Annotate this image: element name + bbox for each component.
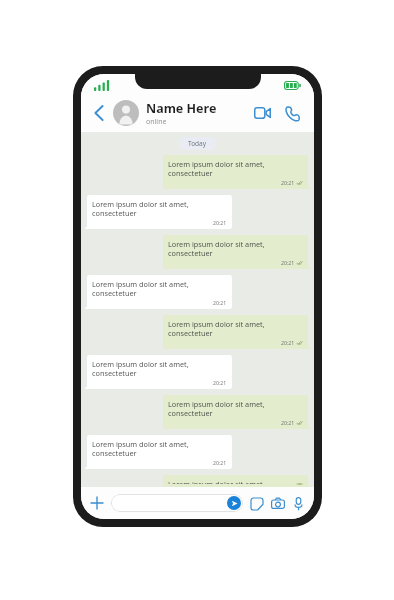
staticText: Lorem ipsum dolor sit amet, consectetuer bbox=[168, 319, 303, 338]
button[interactable]: Video call bbox=[251, 102, 273, 124]
staticText: 20:21 bbox=[281, 179, 295, 186]
staticText: online bbox=[146, 117, 167, 127]
staticText: Lorem ipsum dolor sit amet, consectetuer bbox=[92, 279, 227, 298]
staticText: Today bbox=[188, 139, 207, 148]
button[interactable]: Stickers bbox=[248, 495, 265, 512]
staticText: Lorem ipsum dolor sit amet, consectetuer bbox=[168, 399, 303, 418]
staticText: 20:21 bbox=[213, 379, 227, 386]
button[interactable]: Send bbox=[111, 494, 243, 512]
button[interactable]: Today bbox=[188, 139, 207, 148]
button[interactable]: Lorem ipsum dolor sit amet, consectetuer bbox=[87, 195, 232, 229]
button[interactable]: Lorem ipsum dolor sit amet, consectetuer bbox=[163, 315, 308, 349]
button[interactable]: Lorem ipsum dolor sit amet, consectetuer bbox=[163, 475, 308, 487]
staticText: Lorem ipsum dolor sit amet, consectetuer bbox=[92, 199, 227, 218]
button[interactable]: Lorem ipsum dolor sit amet, consectetuer bbox=[87, 355, 232, 389]
staticText: 20:21 bbox=[213, 219, 227, 226]
staticText: Lorem ipsum dolor sit amet, consectetuer bbox=[92, 439, 227, 458]
staticText: Lorem ipsum dolor sit amet, consectetuer bbox=[168, 479, 303, 484]
button[interactable]: Lorem ipsum dolor sit amet, consectetuer bbox=[87, 275, 232, 309]
button[interactable]: Lorem ipsum dolor sit amet, consectetuer bbox=[87, 435, 232, 469]
staticText: 20:21 bbox=[281, 419, 295, 426]
button[interactable]: Camera bbox=[269, 495, 286, 512]
staticText: 20:21 bbox=[213, 299, 227, 306]
staticText: Lorem ipsum dolor sit amet, consectetuer bbox=[168, 159, 303, 178]
button[interactable]: Lorem ipsum dolor sit amet, consectetuer bbox=[163, 155, 308, 189]
staticText: Lorem ipsum dolor sit amet, consectetuer bbox=[92, 359, 227, 378]
staticText: Lorem ipsum dolor sit amet, consectetuer bbox=[168, 239, 303, 258]
button[interactable]: Attach bbox=[88, 494, 106, 512]
button[interactable]: Back bbox=[89, 103, 109, 123]
button[interactable]: Voice call bbox=[281, 102, 303, 124]
staticText: Name Here bbox=[146, 100, 217, 117]
button[interactable]: Lorem ipsum dolor sit amet, consectetuer bbox=[163, 235, 308, 269]
staticText: 20:21 bbox=[213, 459, 227, 466]
staticText: 20:21 bbox=[281, 259, 295, 266]
button[interactable]: Lorem ipsum dolor sit amet, consectetuer bbox=[163, 395, 308, 429]
staticText: 20:21 bbox=[281, 339, 295, 346]
button[interactable]: Send bbox=[227, 496, 241, 510]
button[interactable]: Voice message bbox=[290, 495, 307, 512]
